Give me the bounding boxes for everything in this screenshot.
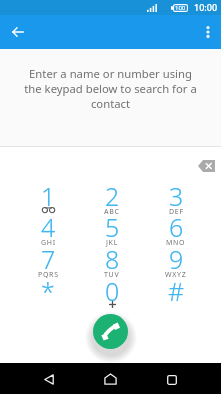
button[interactable]: * (16, 279, 80, 309)
button[interactable]: # (144, 279, 208, 309)
staticText: 5 (105, 210, 120, 240)
button[interactable]: 0 (80, 279, 144, 309)
button[interactable]: 4 (16, 215, 80, 245)
staticText: WXYZ (165, 270, 187, 280)
staticText: * (41, 274, 55, 304)
button[interactable]: 3 (144, 184, 208, 214)
button[interactable]: 1 (16, 184, 80, 214)
button[interactable]: 7 (16, 247, 80, 277)
staticText: GHI (41, 238, 56, 248)
button[interactable]: 8 (80, 247, 144, 277)
staticText: 4 (41, 210, 56, 240)
staticText: DEF (169, 207, 184, 217)
button[interactable]: Recents (154, 363, 190, 394)
staticText: 10:00 (194, 1, 218, 13)
staticText: 2 (105, 179, 120, 209)
button[interactable]: Home (92, 363, 128, 394)
staticText: JKL (106, 238, 119, 248)
button[interactable]: 9 (144, 247, 208, 277)
staticText: ABC (104, 207, 120, 217)
staticText: TUV (104, 270, 120, 280)
staticText: 3 (169, 179, 184, 209)
staticText: PQRS (38, 270, 59, 280)
staticText: MNO (166, 238, 186, 248)
button[interactable]: 5 (80, 215, 144, 245)
button[interactable]: More options (193, 17, 221, 47)
staticText: 9 (169, 242, 184, 272)
staticText: 8 (105, 242, 120, 272)
button[interactable]: Back (31, 363, 67, 394)
button[interactable]: 6 (144, 215, 208, 245)
button[interactable]: Backspace (194, 154, 218, 178)
staticText: Enter a name or number using the keypad … (0, 66, 221, 111)
button[interactable]: Back (3, 17, 33, 47)
staticText: 100 (175, 4, 186, 12)
staticText: 7 (41, 242, 56, 272)
staticText: 0 (105, 274, 120, 304)
staticText: # (168, 274, 185, 304)
staticText: 1 (41, 179, 56, 209)
button[interactable]: 2 (80, 184, 144, 214)
button[interactable]: Call (93, 314, 128, 349)
staticText: 6 (169, 210, 184, 240)
